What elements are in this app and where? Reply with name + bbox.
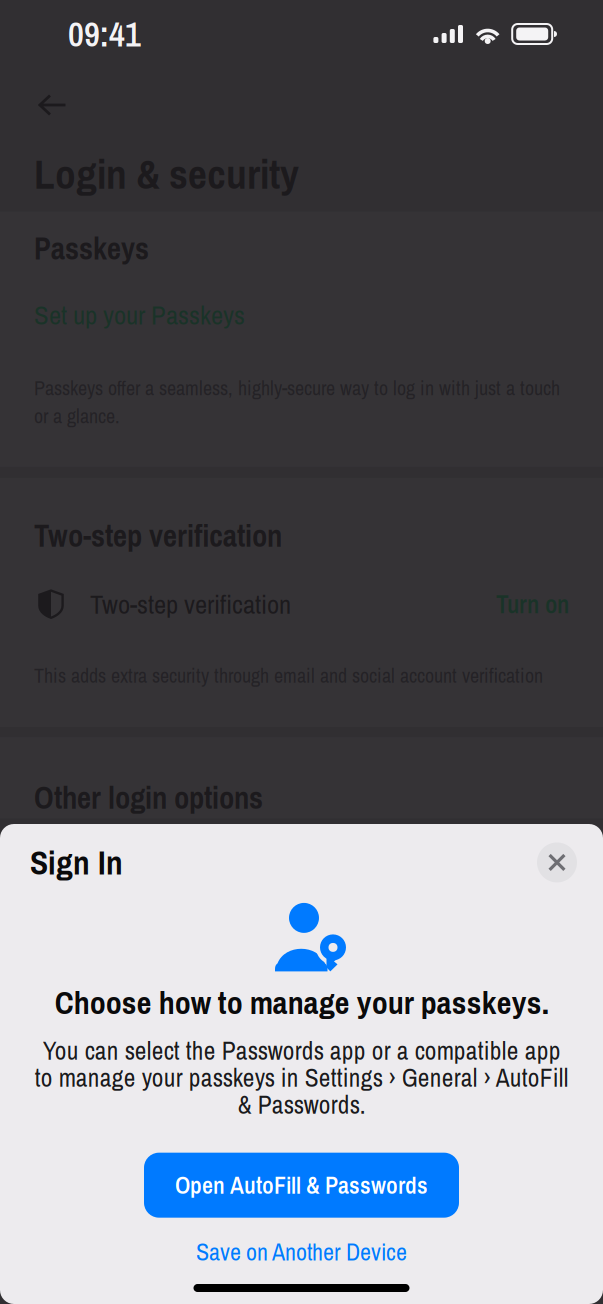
- staticText: Save on Another Device: [196, 1236, 407, 1268]
- staticText: Sign In: [30, 840, 123, 885]
- staticText: & Passwords.: [237, 1087, 365, 1121]
- staticText: You can select the Passwords app or a co…: [42, 1033, 560, 1067]
- button[interactable]: Close: [535, 840, 579, 884]
- button[interactable]: Set up your Passkeys: [34, 269, 569, 347]
- staticText: This adds extra security through email a…: [34, 662, 543, 689]
- staticText: or a glance.: [34, 402, 120, 429]
- staticText: Login & security: [34, 146, 299, 202]
- staticText: Other login options: [34, 777, 263, 818]
- staticText: Two-step verification: [90, 586, 291, 622]
- staticText: 09:41: [68, 11, 141, 57]
- staticText: Open AutoFill & Passwords: [175, 1169, 428, 1201]
- button[interactable]: Two-step verification: [34, 556, 569, 636]
- button[interactable]: Open AutoFill & Passwords: [144, 1153, 459, 1218]
- staticText: Two-step verification: [34, 515, 282, 556]
- button[interactable]: Save on Another Device: [0, 1221, 603, 1274]
- staticText: Passkeys offer a seamless, highly-secure…: [34, 374, 560, 401]
- staticText: Passkeys: [34, 228, 149, 269]
- staticText: Set up your Passkeys: [34, 297, 245, 333]
- staticText: Turn on: [496, 587, 569, 621]
- staticText: Choose how to manage your passkeys.: [54, 981, 548, 1024]
- staticText: to manage your passkeys in Settings › Ge…: [34, 1060, 568, 1094]
